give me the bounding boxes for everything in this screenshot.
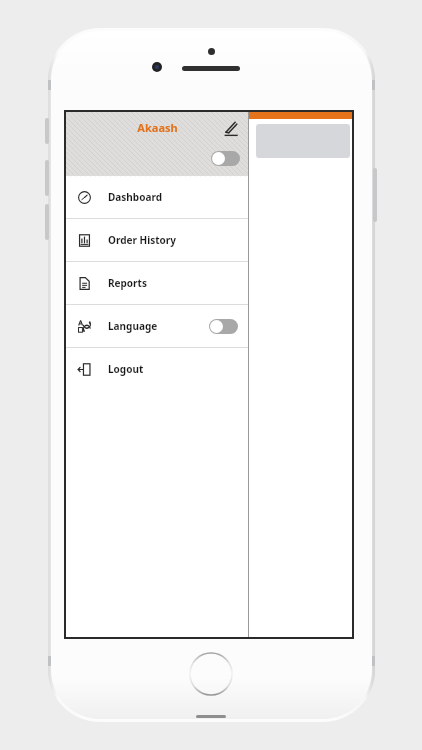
button[interactable]: Dashboard bbox=[66, 176, 248, 218]
button[interactable]: Reports bbox=[66, 262, 248, 304]
button[interactable]: Logout bbox=[66, 348, 248, 390]
staticText: Order History bbox=[108, 233, 176, 247]
staticText: Akaash bbox=[137, 120, 178, 135]
staticText: Logout bbox=[108, 362, 144, 376]
staticText: Language bbox=[108, 319, 158, 333]
staticText: Dashboard bbox=[108, 190, 162, 204]
button[interactable]: Language bbox=[66, 305, 248, 347]
button[interactable]: Profile toggle bbox=[211, 151, 240, 166]
staticText: Reports bbox=[108, 276, 147, 290]
button[interactable]: Edit profile bbox=[220, 117, 242, 139]
button[interactable]: Order History bbox=[66, 219, 248, 261]
